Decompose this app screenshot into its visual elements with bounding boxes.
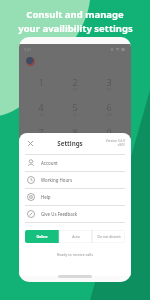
button[interactable]: Working Hours — [19, 172, 131, 188]
button[interactable]: Do not disturb — [92, 230, 125, 243]
staticText: Online — [36, 234, 48, 239]
button[interactable]: Auto — [59, 230, 92, 243]
button[interactable]: Close — [25, 138, 35, 148]
staticText: Help — [41, 194, 51, 200]
button[interactable]: 8 — [63, 126, 87, 139]
staticText: 4 — [38, 101, 44, 113]
button[interactable]: 3 — [97, 76, 121, 92]
staticText: Settings — [57, 139, 83, 147]
staticText: your availibility settings — [18, 22, 133, 35]
staticText: Account — [41, 160, 58, 166]
staticText: Do not disturb — [97, 234, 121, 239]
button[interactable]: Give Us Feedback — [19, 206, 131, 222]
staticText: Ready to receive calls — [19, 252, 131, 257]
staticText: 9:41 — [24, 47, 31, 52]
staticText: 7 — [38, 126, 44, 138]
staticText: Give Us Feedback — [41, 211, 78, 217]
staticText: Working Hours — [41, 177, 73, 183]
button[interactable]: 7 — [29, 126, 53, 139]
staticText: 1 — [38, 76, 44, 88]
staticText: 2 — [72, 76, 78, 88]
staticText: 9 — [106, 126, 112, 138]
staticText: 6 — [106, 101, 112, 113]
button[interactable]: 6 — [97, 101, 121, 117]
staticText: v3691 — [117, 143, 125, 147]
button[interactable]: Help — [19, 189, 131, 205]
staticText: Version 3.6.0 — [105, 139, 125, 143]
staticText: 8 — [72, 126, 78, 138]
button[interactable]: Account — [19, 155, 131, 171]
staticText: 5 — [72, 101, 78, 113]
button[interactable]: Online — [25, 230, 59, 243]
staticText: Consult and manage — [26, 8, 124, 21]
staticText: 3 — [106, 76, 112, 88]
button[interactable]: 9 — [97, 126, 121, 139]
button[interactable]: 4 — [29, 101, 53, 117]
staticText: Auto — [72, 234, 80, 239]
